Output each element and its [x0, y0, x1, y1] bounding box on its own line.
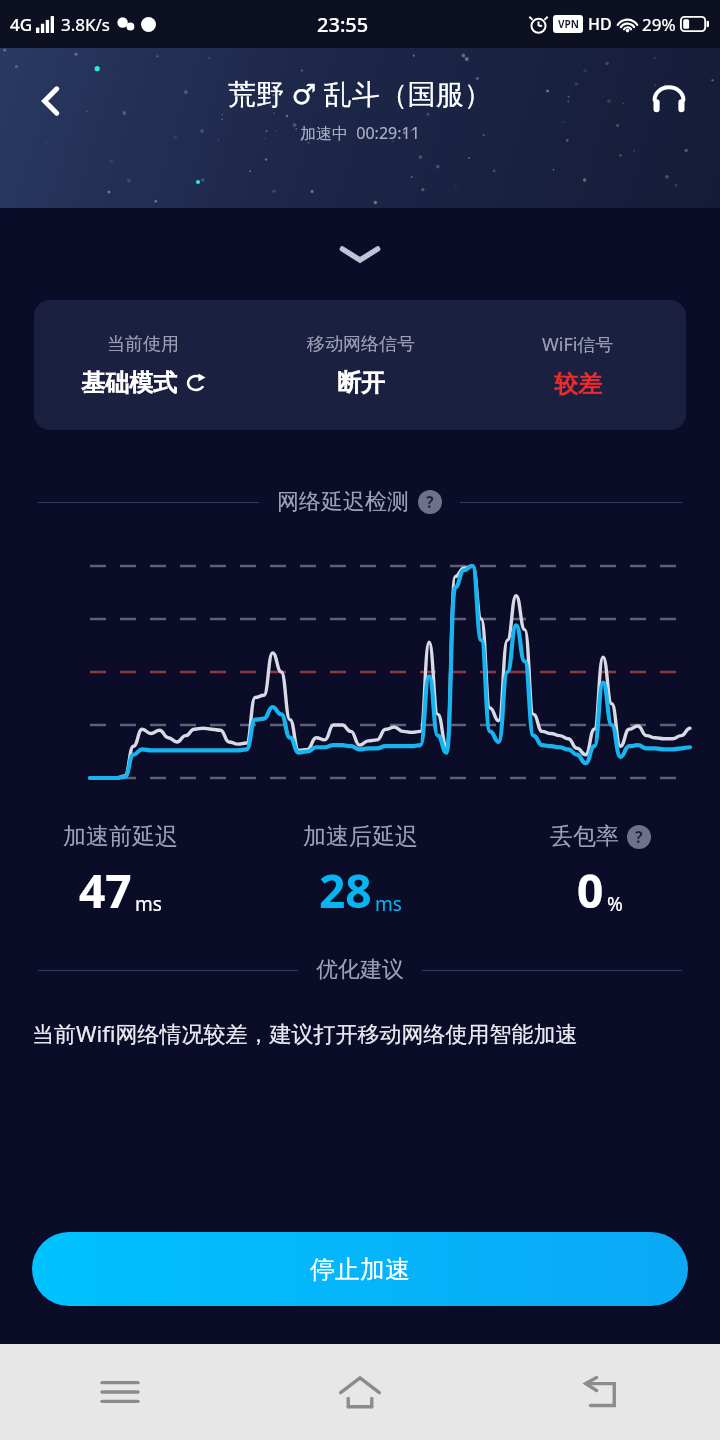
staticText: 23:55 [317, 11, 369, 38]
button[interactable]: 丢包率 [480, 822, 720, 922]
staticText: 47 [79, 859, 132, 922]
staticText: 加速中 00:29:11 [300, 122, 420, 144]
staticText: 停止加速 [310, 1254, 410, 1285]
staticText: 网络延迟检测 [277, 488, 409, 516]
staticText: 当前使用 [107, 333, 179, 356]
button[interactable]: Back [18, 68, 84, 134]
staticText: 加速前延迟 [63, 822, 178, 851]
staticText: ms [135, 891, 162, 917]
staticText: 移动网络信号 [307, 333, 415, 356]
button[interactable]: 移动网络信号 [252, 300, 469, 430]
button[interactable]: Customer support [636, 68, 702, 134]
staticText: 当前Wifi网络情况较差，建议打开移动网络使用智能加速 [32, 1018, 578, 1048]
button[interactable]: 停止加速 [32, 1232, 688, 1306]
button[interactable]: Collapse [0, 208, 720, 300]
button[interactable]: 加速前延迟 [0, 822, 240, 922]
staticText: ms [375, 891, 402, 917]
button[interactable]: 加速后延迟 [240, 822, 480, 922]
staticText: 0 [577, 859, 604, 922]
staticText: ? [426, 491, 434, 513]
staticText: 荒野 ♂ 乱斗（国服） [228, 74, 492, 112]
staticText: VPN [558, 17, 579, 31]
staticText: 4G [10, 13, 33, 36]
button[interactable]: Back [480, 1344, 720, 1440]
staticText: 断开 [337, 368, 385, 398]
button[interactable]: Recent apps [0, 1344, 240, 1440]
button[interactable]: Help [627, 825, 651, 849]
staticText: 优化建议 [316, 956, 404, 984]
staticText: 基础模式 [81, 368, 177, 398]
staticText: 加速后延迟 [303, 822, 418, 851]
staticText: HD [588, 13, 612, 35]
staticText: ? [635, 826, 643, 848]
staticText: 丢包率 [550, 822, 619, 851]
button[interactable]: 当前使用 [34, 300, 252, 430]
staticText: % [607, 891, 623, 917]
staticText: 29% [642, 13, 676, 36]
button[interactable]: WiFi信号 [469, 300, 686, 430]
staticText: 3.8K/s [61, 13, 110, 36]
staticText: WiFi信号 [542, 332, 614, 357]
button[interactable]: Help [418, 490, 442, 514]
staticText: 28 [319, 859, 372, 922]
button[interactable]: Home [240, 1344, 480, 1440]
staticText: 较差 [554, 369, 602, 399]
